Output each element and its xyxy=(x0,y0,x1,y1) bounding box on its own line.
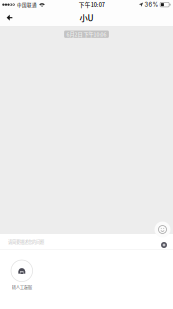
staticText: 小U xyxy=(79,12,93,24)
button[interactable]: Back xyxy=(0,9,19,26)
button[interactable]: Emoji xyxy=(154,221,170,237)
staticText: 6月2日 下午10:06 xyxy=(66,30,106,38)
button[interactable]: More options xyxy=(158,239,170,251)
staticText: 中国联通 xyxy=(17,1,37,8)
staticText: 请简要描述您的问题 xyxy=(8,238,44,245)
staticText: 下午10:07 xyxy=(79,1,105,9)
staticText: 转人工客服 xyxy=(12,284,32,290)
staticText: 36% xyxy=(144,1,158,8)
button[interactable]: 转人工客服 xyxy=(11,260,33,290)
